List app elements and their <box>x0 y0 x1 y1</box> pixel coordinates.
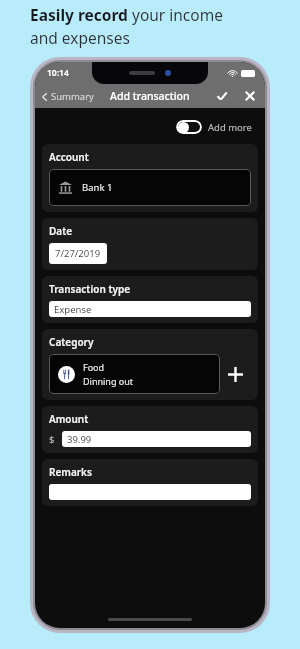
staticText: $ <box>49 433 55 446</box>
staticText: Food <box>83 361 105 373</box>
button[interactable]: Add category <box>220 360 251 389</box>
staticText: Amount <box>49 412 89 426</box>
staticText: Expense <box>54 303 92 316</box>
staticText: 10:14 <box>47 67 69 79</box>
staticText: Category <box>49 335 94 349</box>
button[interactable]: 39.99 <box>62 431 251 447</box>
button[interactable]: Close <box>239 85 261 107</box>
staticText: Transaction type <box>49 282 131 296</box>
button[interactable]: Expense <box>49 301 251 317</box>
staticText: Remarks <box>49 465 92 479</box>
staticText: Summary <box>51 90 94 103</box>
staticText: Add transaction <box>110 89 190 103</box>
button[interactable]: Save transaction <box>211 85 233 107</box>
staticText: 39.99 <box>67 433 92 446</box>
staticText: Easily record <box>30 4 132 25</box>
staticText: Dinning out <box>83 375 134 387</box>
staticText: and expenses <box>30 27 130 48</box>
staticText: your income <box>132 4 223 25</box>
button[interactable]: Add more <box>173 117 255 137</box>
staticText: 7/27/2019 <box>55 247 101 260</box>
staticText: Bank 1 <box>82 181 113 194</box>
button[interactable]: Bank 1 <box>49 169 251 206</box>
staticText: Account <box>49 150 89 164</box>
button[interactable] <box>49 484 251 500</box>
button[interactable]: Food <box>49 354 220 394</box>
button[interactable]: 7/27/2019 <box>49 243 107 264</box>
button[interactable]: Summary <box>35 88 100 105</box>
staticText: Date <box>49 224 73 238</box>
staticText: Add more <box>208 121 252 134</box>
